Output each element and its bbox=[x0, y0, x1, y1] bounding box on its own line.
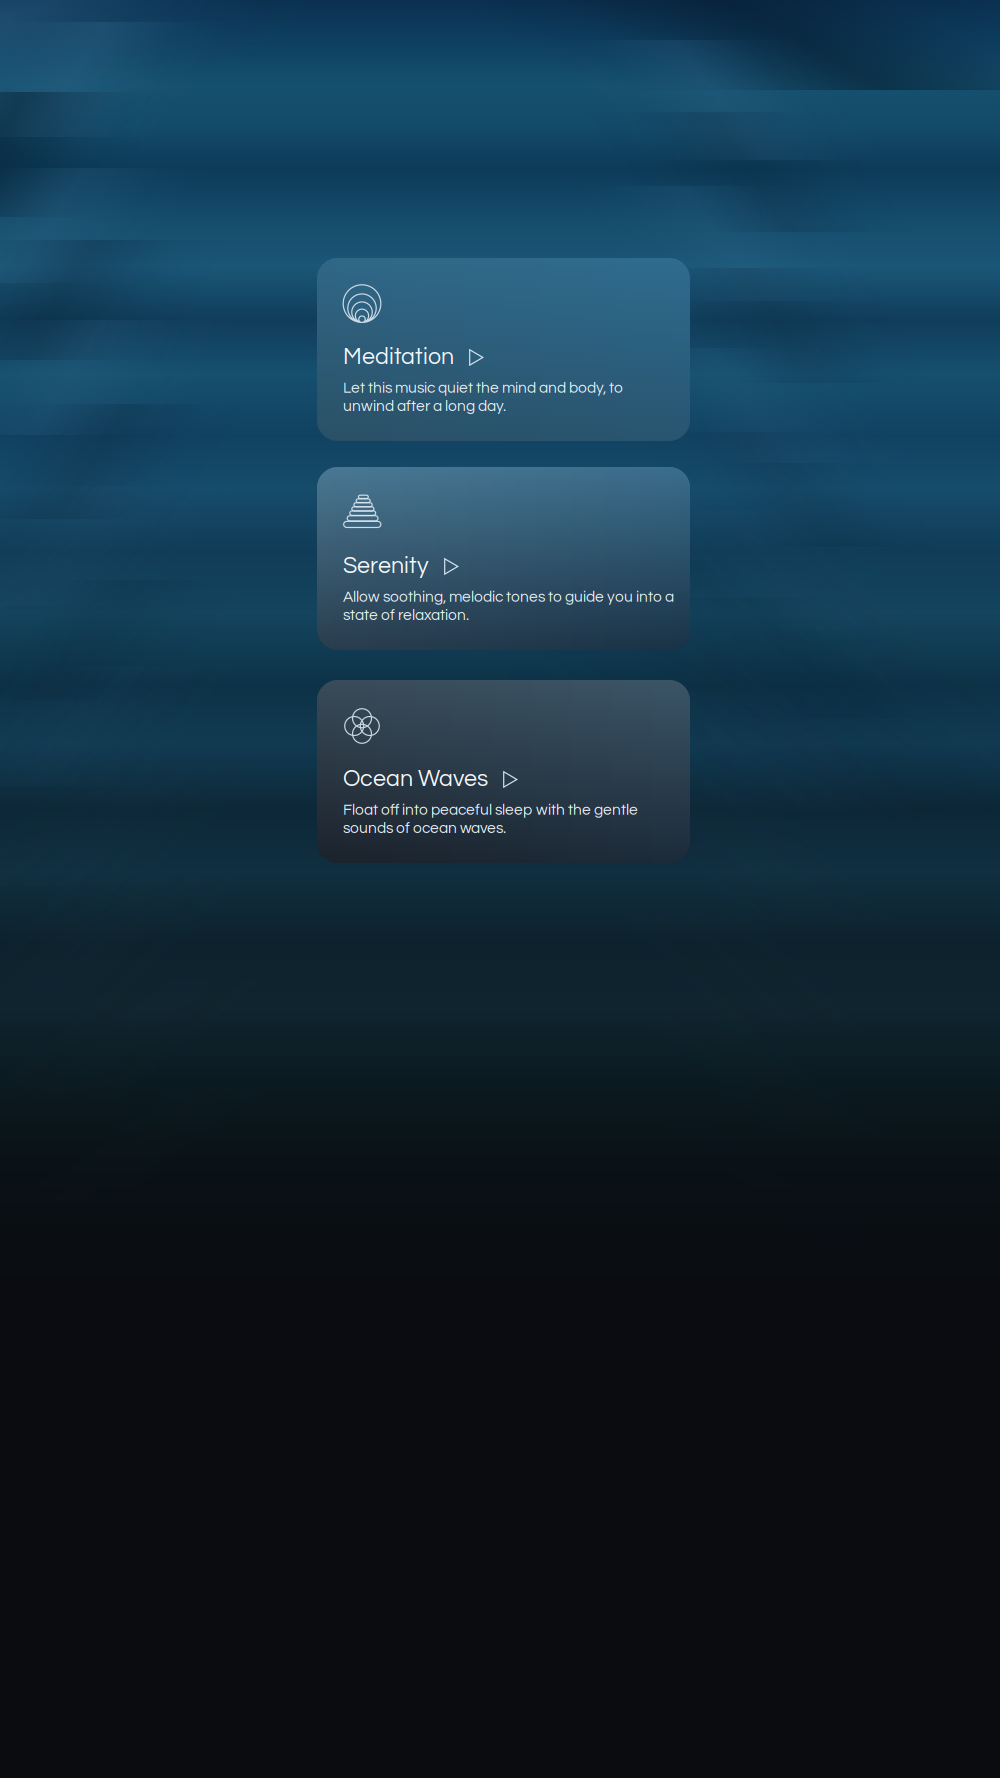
staticText: Allow soothing, melodic tones to guide y… bbox=[343, 589, 674, 605]
button[interactable]: Serenity bbox=[317, 467, 690, 650]
staticText: unwind after a long day. bbox=[343, 398, 506, 414]
staticText: Meditation bbox=[343, 345, 454, 369]
button[interactable]: Ocean Waves bbox=[317, 680, 690, 863]
staticText: Float off into peaceful sleep with the g… bbox=[343, 802, 638, 818]
staticText: sounds of ocean waves. bbox=[343, 820, 506, 836]
staticText: Let this music quiet the mind and body, … bbox=[343, 380, 623, 396]
button[interactable]: Meditation bbox=[317, 258, 690, 441]
staticText: state of relaxation. bbox=[343, 607, 469, 623]
staticText: Serenity bbox=[343, 554, 429, 578]
staticText: Ocean Waves bbox=[343, 767, 488, 791]
